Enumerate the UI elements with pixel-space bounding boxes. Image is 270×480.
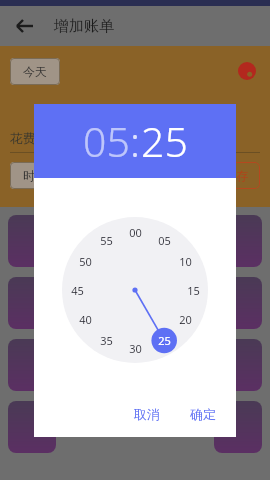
button[interactable] [8,339,56,391]
staticText: 时 [23,168,35,183]
staticText: 10 [179,254,192,269]
staticText: 增加账单 [54,17,114,36]
staticText: 花费 [10,130,36,146]
staticText: 50 [79,254,92,269]
staticText: 55 [100,233,113,248]
staticText: 保存 [224,168,248,183]
button[interactable] [214,339,262,391]
button[interactable]: 时 [23,168,35,183]
button[interactable] [214,277,262,329]
button[interactable] [8,401,56,453]
button[interactable]: 取消 [126,400,168,428]
button[interactable]: 保存 [224,168,248,183]
button[interactable]: 00 [62,217,208,363]
button[interactable]: 25 [141,113,188,169]
button[interactable]: 今天 [23,64,47,79]
staticText: 40 [79,312,92,327]
button[interactable] [8,215,56,267]
staticText: 05 [158,233,171,248]
button[interactable] [214,215,262,267]
staticText: 15 [187,283,200,298]
button[interactable]: 确定 [182,400,224,428]
button[interactable] [8,277,56,329]
button[interactable] [214,401,262,453]
staticText: : [130,113,141,169]
staticText: 30 [129,341,142,356]
staticText: 确定 [190,406,216,422]
staticText: 00 [129,225,142,240]
button[interactable]: 05 [83,113,130,169]
button[interactable]: Back [10,11,40,41]
staticText: 45 [71,283,84,298]
button[interactable]: Color palette [238,62,256,80]
staticText: 取消 [134,406,160,422]
staticText: 35 [100,333,113,348]
staticText: 20 [179,312,192,327]
staticText: 今天 [23,64,47,79]
staticText: 25 [158,333,171,348]
